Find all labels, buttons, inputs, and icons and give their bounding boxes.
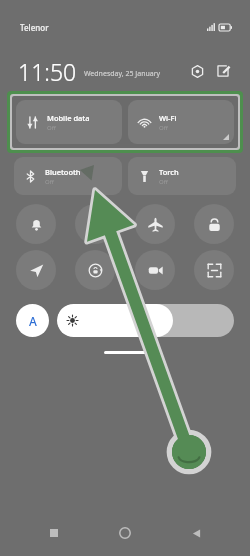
staticText: Wi-Fi bbox=[159, 113, 177, 123]
button[interactable]: Home bbox=[108, 516, 142, 550]
button[interactable]: scan bbox=[194, 250, 234, 290]
button[interactable]: scissors bbox=[75, 204, 115, 244]
button[interactable]: Auto brightness bbox=[16, 304, 49, 337]
button[interactable]: rotate bbox=[75, 250, 115, 290]
staticText: Off bbox=[159, 124, 168, 132]
button[interactable]: Torch bbox=[128, 157, 236, 195]
staticText: Off bbox=[45, 178, 54, 186]
button[interactable]: Back bbox=[179, 516, 213, 550]
staticText: A bbox=[29, 313, 37, 329]
button[interactable]: bell bbox=[16, 204, 56, 244]
button[interactable]: Settings bbox=[186, 60, 208, 82]
button[interactable]: lock bbox=[194, 204, 234, 244]
button[interactable]: Mobile data bbox=[16, 100, 122, 144]
button[interactable]: Bluetooth bbox=[14, 157, 122, 195]
staticText: 11:50 bbox=[18, 56, 77, 87]
button[interactable]: Wi-Fi bbox=[128, 100, 234, 144]
staticText: Telenor bbox=[20, 22, 49, 33]
staticText: Bluetooth bbox=[45, 167, 81, 177]
button[interactable]: Recents bbox=[37, 516, 71, 550]
staticText: Off bbox=[47, 124, 56, 132]
button[interactable]: nav bbox=[16, 250, 56, 290]
staticText: Mobile data bbox=[47, 113, 90, 123]
button[interactable]: plane bbox=[135, 204, 175, 244]
button[interactable]: Brightness bbox=[57, 304, 234, 337]
staticText: Torch bbox=[159, 167, 179, 177]
staticText: Wednesday, 25 January bbox=[84, 69, 161, 79]
staticText: Off bbox=[159, 178, 168, 186]
button[interactable]: video bbox=[135, 250, 175, 290]
button[interactable]: Edit bbox=[212, 60, 234, 82]
